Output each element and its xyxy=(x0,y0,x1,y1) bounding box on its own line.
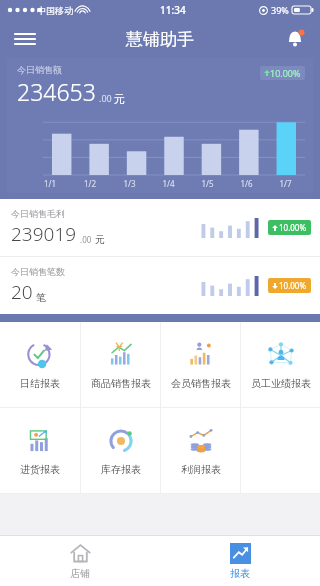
staticText: 利润报表 xyxy=(181,463,221,476)
staticText: 239019 xyxy=(11,221,77,247)
staticText: .00 xyxy=(99,92,112,104)
button[interactable]: 今日销售毛利 xyxy=(0,199,320,256)
staticText: 20 xyxy=(11,279,33,305)
staticText: 39% xyxy=(271,4,289,16)
staticText: 1/2 xyxy=(70,178,110,189)
button[interactable]: 店铺 xyxy=(0,536,160,586)
staticText: 234653 xyxy=(17,76,96,107)
staticText: 今日销售额 xyxy=(17,64,62,75)
button[interactable]: 商品销售报表 xyxy=(81,322,160,407)
staticText: 中国移动 xyxy=(37,5,73,16)
button[interactable]: 会员销售报表 xyxy=(161,322,240,407)
button[interactable]: 10.00% xyxy=(268,220,311,235)
button[interactable]: 今日销售额 xyxy=(7,58,313,193)
staticText: 会员销售报表 xyxy=(171,377,231,390)
button[interactable]: 进货报表 xyxy=(0,408,80,493)
staticText: 商品销售报表 xyxy=(91,377,151,390)
staticText: 1/6 xyxy=(227,178,266,189)
staticText: 1/5 xyxy=(188,178,227,189)
staticText: 10.00% xyxy=(270,67,301,79)
button[interactable]: 报表 xyxy=(160,536,320,586)
button[interactable]: 利润报表 xyxy=(161,408,240,493)
staticText: 1/7 xyxy=(266,178,305,189)
button[interactable]: 10.00% xyxy=(260,66,305,80)
button[interactable]: 10.00% xyxy=(268,278,311,293)
button[interactable]: 今日销售笔数 xyxy=(0,257,320,314)
staticText: 进货报表 xyxy=(20,463,60,476)
staticText: 1/3 xyxy=(110,178,149,189)
button[interactable]: Notifications xyxy=(276,20,314,58)
staticText: 日结报表 xyxy=(20,377,60,390)
staticText: .00 xyxy=(80,234,92,245)
staticText: 慧铺助手 xyxy=(126,29,194,50)
staticText: 报表 xyxy=(230,567,250,580)
staticText: 10.00% xyxy=(279,222,307,233)
staticText: 店铺 xyxy=(70,567,90,580)
staticText: 今日销售毛利 xyxy=(11,208,65,219)
staticText: 10.00% xyxy=(279,280,307,291)
button[interactable]: 员工业绩报表 xyxy=(241,322,320,407)
staticText: 1/4 xyxy=(149,178,188,189)
button[interactable]: 库存报表 xyxy=(81,408,160,493)
staticText: 元 xyxy=(114,92,125,106)
staticText: 今日销售笔数 xyxy=(11,266,65,277)
staticText: 笔 xyxy=(36,291,46,304)
staticText: 库存报表 xyxy=(101,463,141,476)
button[interactable]: Menu xyxy=(6,20,44,58)
staticText: 元 xyxy=(95,233,105,246)
staticText: 员工业绩报表 xyxy=(251,377,311,390)
button[interactable]: 日结报表 xyxy=(0,322,80,407)
staticText: 11:34 xyxy=(160,3,186,17)
staticText: 1/1 xyxy=(30,178,70,189)
